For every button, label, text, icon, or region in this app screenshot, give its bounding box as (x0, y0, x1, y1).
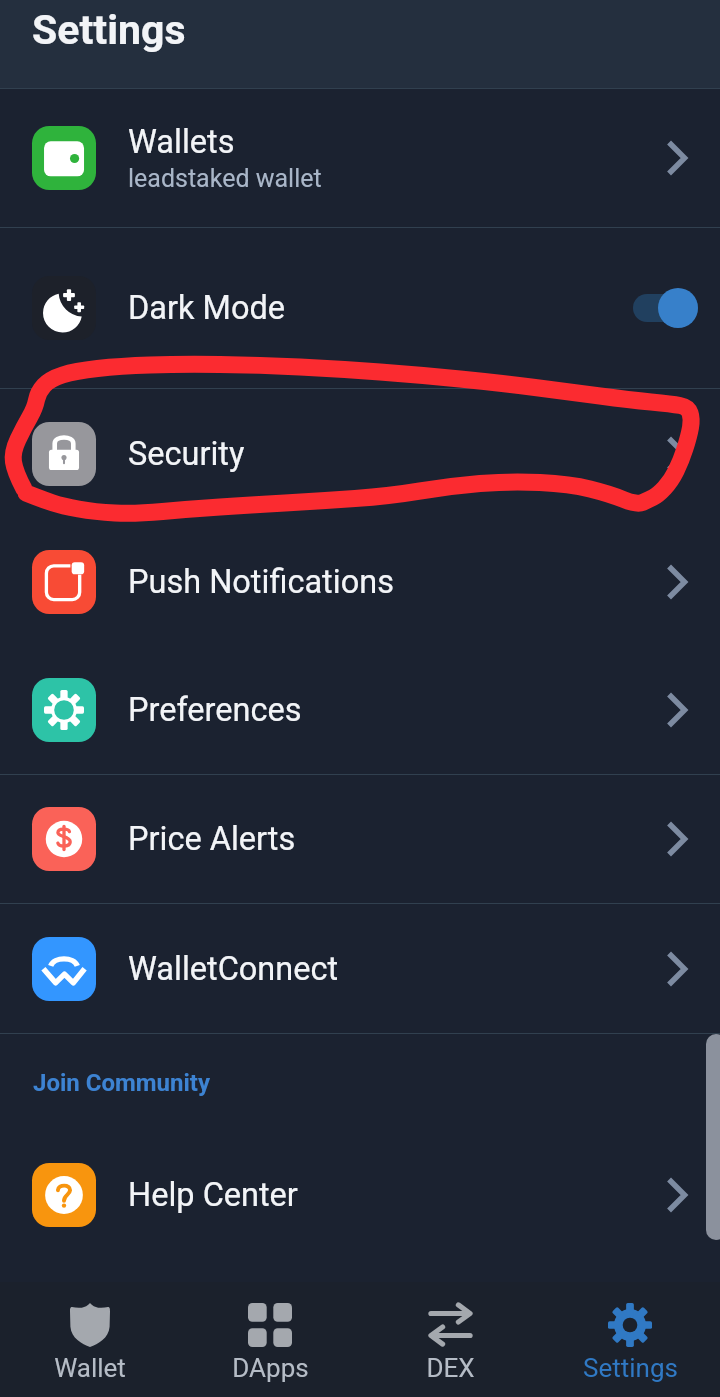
button[interactable]: Price Alerts (0, 775, 720, 903)
staticText: Preferences (128, 691, 302, 729)
button[interactable]: Push Notifications (0, 518, 720, 646)
staticText: Settings (32, 6, 186, 54)
button[interactable]: Security (0, 389, 720, 518)
staticText: Settings (583, 1353, 678, 1383)
staticText: Join Community (33, 1069, 210, 1097)
staticText: WalletConnect (128, 950, 339, 988)
staticText: DEX (426, 1353, 475, 1383)
button[interactable]: Preferences (0, 646, 720, 774)
staticText: Wallet (54, 1353, 126, 1383)
staticText: DApps (232, 1353, 309, 1383)
staticText: Dark Mode (128, 289, 286, 327)
button[interactable]: Wallet (0, 1282, 180, 1397)
button[interactable]: WalletConnect (0, 904, 720, 1033)
button[interactable]: DApps (180, 1282, 360, 1397)
staticText: Security (128, 435, 245, 473)
button[interactable]: Wallets (0, 89, 720, 227)
button[interactable]: Help Center (0, 1131, 720, 1259)
button[interactable]: Settings (540, 1282, 720, 1397)
button[interactable]: DEX (360, 1282, 540, 1397)
staticText: Price Alerts (128, 820, 296, 858)
button[interactable]: Dark Mode toggle (633, 284, 698, 332)
staticText: Wallets (128, 123, 235, 161)
staticText: Push Notifications (128, 563, 394, 601)
staticText: Help Center (128, 1176, 298, 1214)
staticText: leadstaked wallet (128, 164, 322, 193)
button[interactable]: Dark Mode (0, 228, 720, 388)
